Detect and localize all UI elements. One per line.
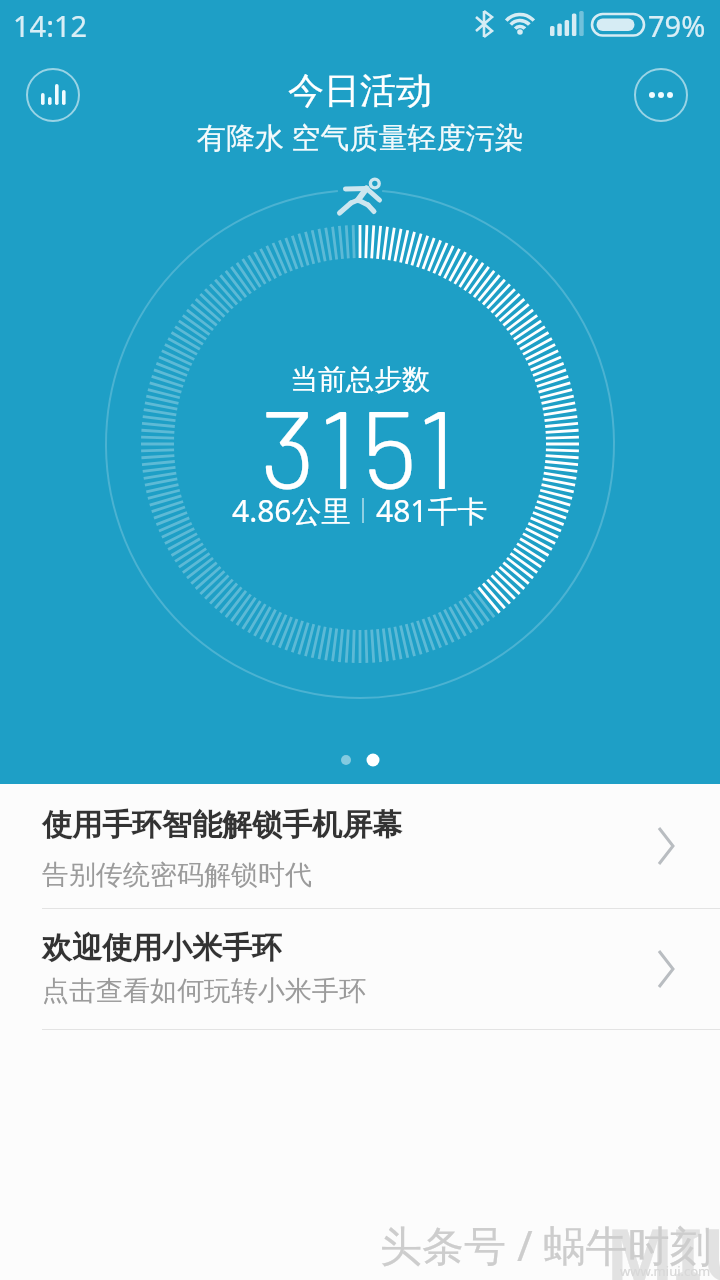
staticText: MIUI	[606, 1204, 720, 1280]
staticText: 79%	[648, 6, 706, 45]
staticText: 当前总步数	[290, 362, 430, 397]
staticText: 有降水 空气质量轻度污染	[197, 117, 524, 157]
button[interactable]: 欢迎使用小米手环	[0, 909, 720, 1029]
staticText: 今日活动	[288, 68, 432, 113]
button[interactable]: 使用手环智能解锁手机屏幕	[0, 784, 720, 908]
button[interactable]	[634, 68, 688, 122]
staticText: www.miui.com	[620, 1262, 711, 1280]
staticText: 头条号 / 蜗牛时刻	[380, 1216, 712, 1273]
staticText: 使用手环智能解锁手机屏幕	[42, 806, 402, 844]
staticText: 告别传统密码解锁时代	[42, 858, 312, 892]
staticText: 481千卡	[376, 490, 488, 531]
staticText: 欢迎使用小米手环	[42, 929, 282, 967]
staticText: 14:12	[13, 6, 88, 45]
staticText: 3151	[260, 379, 461, 511]
staticText: 点击查看如何玩转小米手环	[42, 974, 366, 1008]
button[interactable]	[26, 68, 80, 122]
staticText: 4.86公里	[232, 490, 352, 531]
